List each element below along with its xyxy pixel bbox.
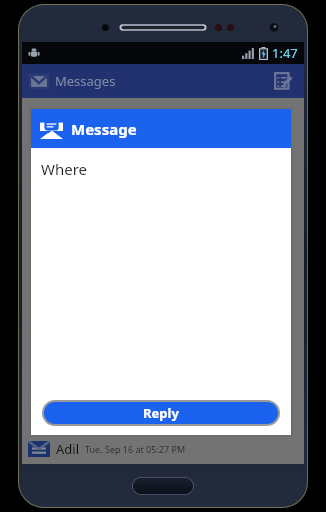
button[interactable]: Home (132, 477, 194, 495)
button[interactable]: Messages (30, 72, 270, 90)
staticText: 1:47 (272, 44, 298, 62)
staticText: Where (41, 159, 88, 179)
staticText: Reply (143, 404, 179, 422)
button[interactable]: Reply (44, 402, 278, 424)
button[interactable]: Compose message (270, 68, 296, 94)
staticText: Adil (56, 440, 80, 458)
staticText: Messages (55, 72, 116, 90)
staticText: Q wapas keya ta mb (70, 393, 174, 408)
staticText: Message (71, 119, 137, 139)
staticText: Tue, Sep 16 at 05:27 PM (85, 443, 186, 455)
staticText: Inbox (28, 392, 61, 408)
button[interactable]: Adil (22, 434, 304, 464)
